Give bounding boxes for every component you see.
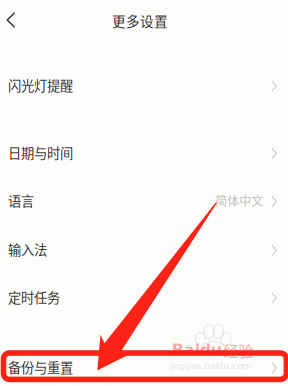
staticText: 备份与重置: [8, 357, 73, 377]
staticText: 语言: [8, 191, 34, 210]
button[interactable]: 日期与时间: [0, 130, 288, 174]
staticText: jingyan.baidu.com: [169, 361, 251, 371]
staticText: 更多设置: [112, 11, 168, 30]
staticText: 闪光灯提醒: [8, 75, 73, 95]
staticText: 简体中文: [215, 192, 263, 209]
button[interactable]: 输入法: [0, 227, 288, 271]
staticText: 日期与时间: [8, 143, 73, 162]
staticText: 定时任务: [8, 287, 60, 307]
button[interactable]: 定时任务: [0, 275, 288, 319]
button[interactable]: 返回: [0, 3, 26, 37]
button[interactable]: 备份与重置: [0, 340, 288, 386]
staticText: 经验: [223, 339, 253, 361]
staticText: 输入法: [8, 239, 47, 259]
staticText: Baidu: [172, 341, 222, 359]
button[interactable]: 闪光灯提醒: [0, 55, 288, 115]
button[interactable]: 语言: [0, 178, 288, 222]
